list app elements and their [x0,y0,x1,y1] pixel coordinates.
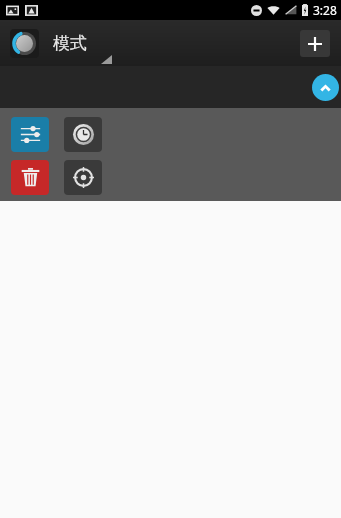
button[interactable]: Add [300,30,330,57]
button[interactable]: 模式 [0,20,341,66]
staticText: 3:28 [313,2,337,18]
staticText: 模式 [53,33,87,54]
button[interactable]: Schedule [64,117,102,152]
button[interactable]: Delete [11,160,49,195]
button[interactable]: Location [64,160,102,195]
button[interactable]: Collapse [312,74,339,101]
button[interactable]: Equalizer [11,117,49,152]
